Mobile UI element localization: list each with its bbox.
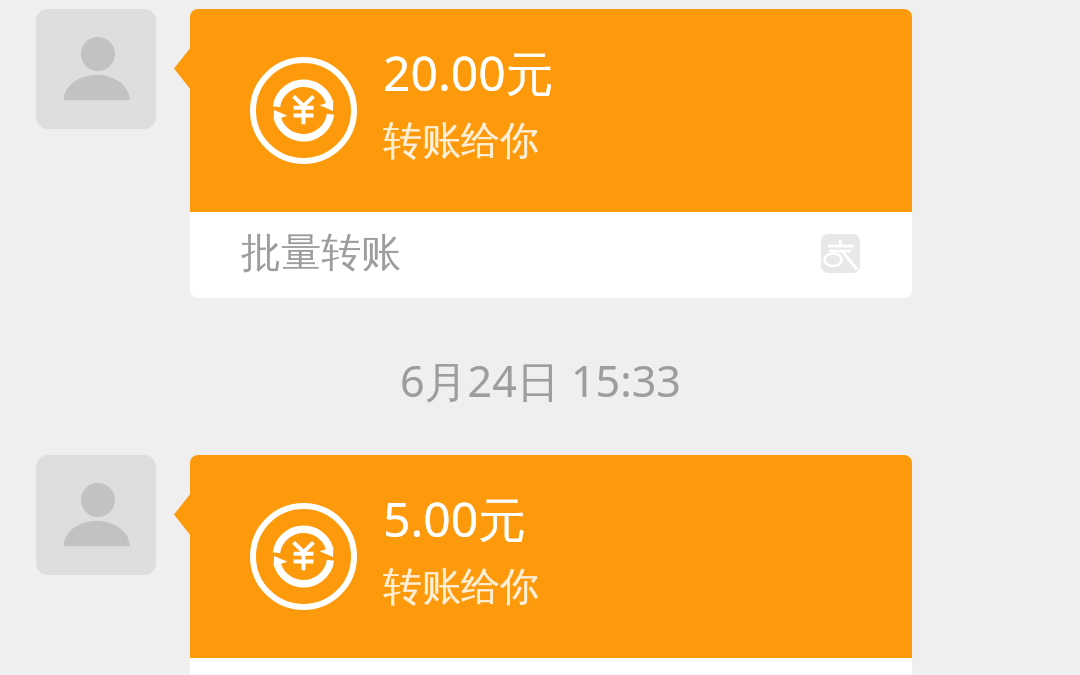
staticText: 6月24日 15:33 — [400, 351, 681, 410]
staticText: 5.00元 — [383, 486, 527, 552]
staticText: 转账给你 — [383, 116, 539, 165]
staticText: 批量转账 — [241, 227, 401, 277]
staticText: 20.00元 — [383, 40, 554, 106]
button[interactable]: 5.00元 — [190, 455, 912, 675]
button[interactable]: Alipay — [821, 234, 860, 273]
staticText: 转账给你 — [383, 562, 539, 611]
button[interactable]: 20.00元 — [190, 9, 912, 298]
button[interactable]: Avatar — [36, 9, 156, 129]
button[interactable]: Avatar — [36, 455, 156, 575]
